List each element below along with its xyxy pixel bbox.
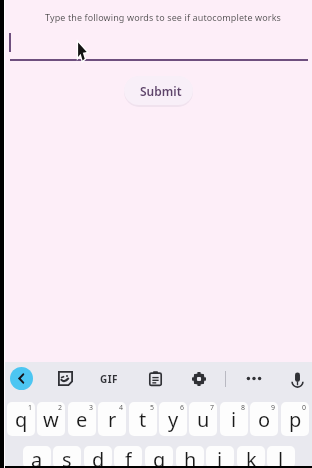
- staticText: 9: [271, 403, 276, 413]
- button[interactable]: Clipboard: [148, 371, 163, 386]
- staticText: h: [184, 446, 197, 468]
- staticText: 5: [150, 403, 155, 413]
- staticText: g: [153, 446, 166, 468]
- button[interactable]: k: [237, 446, 265, 468]
- staticText: f: [125, 446, 132, 468]
- staticText: j: [217, 446, 223, 468]
- staticText: t: [139, 406, 147, 433]
- staticText: 0: [302, 403, 307, 413]
- button[interactable]: w: [37, 402, 65, 436]
- staticText: e: [76, 406, 88, 433]
- button[interactable]: o: [250, 402, 278, 436]
- staticText: d: [92, 446, 105, 468]
- button[interactable]: i: [220, 402, 248, 436]
- button[interactable]: d: [84, 446, 112, 468]
- staticText: 4: [119, 403, 124, 413]
- button[interactable]: t: [129, 402, 157, 436]
- button[interactable]: y: [159, 402, 187, 436]
- button[interactable]: s: [53, 446, 81, 468]
- staticText: GIF: [100, 372, 118, 386]
- staticText: Submit: [140, 83, 182, 99]
- button[interactable]: Back: [10, 367, 33, 390]
- button[interactable]: f: [114, 446, 142, 468]
- button[interactable]: Settings: [191, 371, 206, 386]
- button[interactable]: l: [267, 446, 295, 468]
- button[interactable]: j: [206, 446, 234, 468]
- staticText: Type the following words to see if autoc…: [45, 11, 281, 23]
- staticText: o: [258, 406, 271, 433]
- staticText: r: [108, 406, 117, 433]
- staticText: 7: [210, 403, 215, 413]
- staticText: 6: [180, 403, 185, 413]
- staticText: y: [168, 406, 179, 433]
- button[interactable]: u: [189, 402, 217, 436]
- staticText: l: [278, 446, 284, 468]
- button[interactable]: e: [68, 402, 96, 436]
- button[interactable]: g: [145, 446, 173, 468]
- staticText: k: [246, 446, 257, 468]
- button[interactable]: q: [7, 402, 35, 436]
- staticText: q: [15, 406, 28, 433]
- staticText: 2: [58, 403, 63, 413]
- staticText: a: [31, 446, 43, 468]
- staticText: 1: [28, 403, 33, 413]
- button[interactable]: GIF: [98, 371, 120, 386]
- staticText: i: [231, 406, 237, 433]
- button[interactable]: Submit: [124, 76, 193, 105]
- button[interactable]: r: [98, 402, 126, 436]
- staticText: s: [62, 446, 72, 468]
- button[interactable]: Voice input: [288, 367, 307, 388]
- staticText: 3: [89, 403, 94, 413]
- staticText: 8: [241, 403, 246, 413]
- button[interactable]: p: [281, 402, 309, 436]
- staticText: p: [289, 406, 302, 433]
- staticText: w: [43, 406, 59, 433]
- button[interactable]: Stickers: [58, 371, 73, 386]
- staticText: u: [197, 406, 210, 433]
- button[interactable]: More options: [244, 371, 264, 386]
- button[interactable]: a: [23, 446, 51, 468]
- button[interactable]: h: [176, 446, 204, 468]
